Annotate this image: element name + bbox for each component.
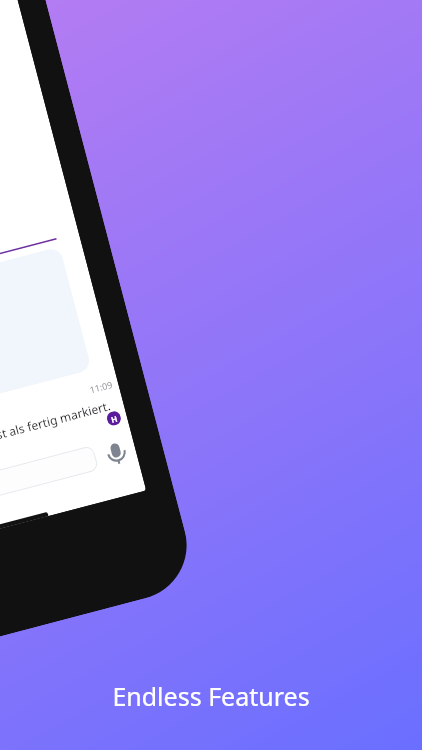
staticText: Endless Features [0, 679, 422, 713]
staticText: H [110, 412, 119, 425]
staticText: ist als fertig markiert. [0, 397, 112, 443]
button[interactable]: Voice message [105, 440, 128, 467]
staticText: 11:09 [88, 378, 115, 395]
button[interactable]: H [105, 410, 122, 427]
